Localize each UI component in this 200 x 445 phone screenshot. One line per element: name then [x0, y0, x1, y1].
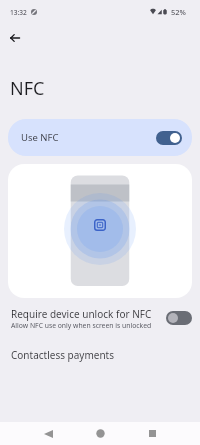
button[interactable]: Toggle on — [156, 131, 182, 145]
button[interactable]: Toggle off — [166, 311, 192, 325]
staticText: 52% — [171, 7, 186, 17]
staticText: NFC — [10, 76, 45, 101]
button[interactable]: Contactless payments — [0, 341, 200, 369]
button[interactable]: Back — [36, 422, 61, 445]
button[interactable]: Use NFC — [8, 119, 192, 156]
button[interactable]: Back — [3, 26, 26, 49]
staticText: Allow NFC use only when screen is unlock… — [11, 321, 152, 330]
staticText: Use NFC — [21, 131, 59, 144]
button[interactable]: Home — [88, 422, 112, 445]
button[interactable]: Require device unlock for NFC — [0, 300, 200, 336]
staticText: Require device unlock for NFC — [11, 307, 152, 321]
staticText: 13:32 — [10, 8, 27, 17]
button[interactable]: Recent apps — [140, 422, 164, 445]
staticText: Contactless payments — [11, 348, 115, 362]
